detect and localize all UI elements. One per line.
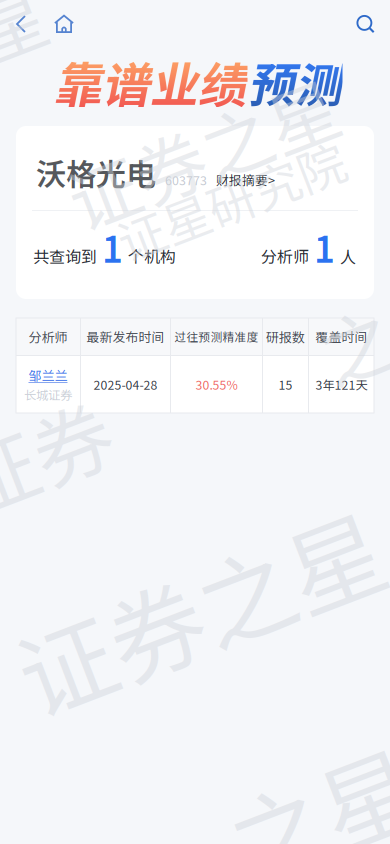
staticText: 15 xyxy=(278,376,292,393)
staticText: 1 xyxy=(314,221,335,273)
staticText: 人 xyxy=(340,244,356,267)
button[interactable]: 财报摘要> xyxy=(207,171,275,189)
staticText: 证券 xyxy=(0,397,114,513)
staticText: 过往预测精准度 xyxy=(174,328,258,345)
staticText: 星 xyxy=(0,0,45,73)
staticText: 分析师 xyxy=(28,327,67,346)
staticText: 分析师 xyxy=(261,244,309,267)
staticText: 研报数 xyxy=(266,327,305,346)
staticText: 之星 xyxy=(226,742,390,844)
staticText: 共查询到 xyxy=(33,244,97,267)
staticText: 个机构 xyxy=(128,244,176,267)
staticText: 最新发布时间 xyxy=(86,327,164,346)
staticText: 603773 xyxy=(165,171,207,189)
button[interactable]: Home xyxy=(42,0,84,44)
staticText: 2025-04-28 xyxy=(93,376,157,393)
staticText: 长城证券 xyxy=(24,385,72,403)
staticText: 财报摘要> xyxy=(216,171,275,189)
button[interactable]: Search xyxy=(339,0,382,44)
staticText: 沃格光电 xyxy=(36,151,156,194)
staticText: 证券之星 xyxy=(61,101,345,203)
staticText: 30.55% xyxy=(195,376,237,393)
staticText: 覆盖时间 xyxy=(315,327,367,346)
staticText: 证星研究院 xyxy=(111,165,351,235)
button[interactable]: Back xyxy=(0,0,42,44)
button[interactable]: 邹兰兰 xyxy=(16,356,80,413)
staticText: 1 xyxy=(102,221,123,273)
staticText: 之星 xyxy=(317,276,390,384)
staticText: 3年121天 xyxy=(315,376,367,393)
staticText: 邹兰兰 xyxy=(28,366,67,384)
staticText: 证券之星 xyxy=(8,540,390,679)
